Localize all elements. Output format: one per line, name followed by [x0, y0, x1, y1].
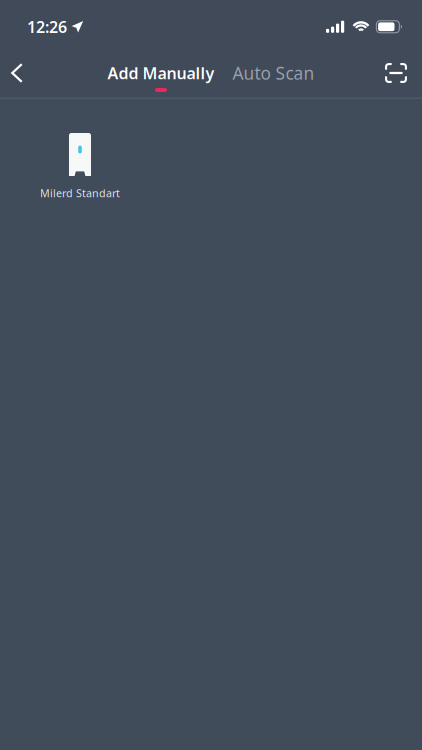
button[interactable]: Back [1, 47, 33, 99]
button[interactable]: Scan [380, 47, 412, 99]
button[interactable]: Auto Scan [232, 54, 314, 92]
staticText: Add Manually [107, 62, 214, 84]
button[interactable]: Milerd Standart [28, 133, 132, 200]
button[interactable]: Add Manually [107, 54, 214, 92]
staticText: Auto Scan [232, 61, 314, 84]
staticText: 12:26 [27, 16, 67, 37]
staticText: Milerd Standart [40, 186, 120, 200]
